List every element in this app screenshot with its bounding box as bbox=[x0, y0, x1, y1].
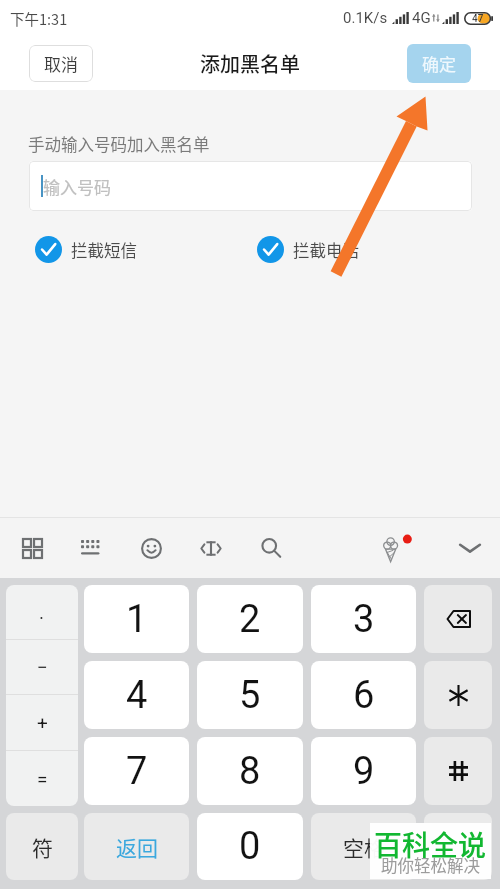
button[interactable] bbox=[424, 813, 492, 880]
staticText: . bbox=[39, 601, 45, 623]
button[interactable]: 6 bbox=[311, 661, 416, 729]
staticText: 助你轻松解决 bbox=[381, 853, 480, 877]
button[interactable]: 1 bbox=[84, 585, 189, 653]
button[interactable]: 返回 bbox=[84, 813, 189, 880]
button[interactable]: − bbox=[6, 640, 78, 694]
button[interactable]: = bbox=[6, 751, 78, 806]
staticText: 百科全说 bbox=[374, 824, 487, 865]
button[interactable]: Number pad bbox=[72, 529, 110, 567]
staticText: 3 bbox=[353, 597, 375, 642]
button[interactable]: Theme bbox=[377, 529, 415, 567]
button[interactable]: 拦截电话 bbox=[257, 236, 359, 263]
staticText: 9 bbox=[353, 749, 375, 794]
staticText: 空格 bbox=[343, 832, 385, 862]
button[interactable]: Hash bbox=[424, 737, 492, 805]
button[interactable]: Search bbox=[252, 529, 290, 567]
staticText: 取消 bbox=[44, 51, 78, 76]
staticText: 符 bbox=[32, 832, 53, 862]
staticText: 7 bbox=[126, 749, 148, 794]
staticText: 2 bbox=[239, 597, 261, 642]
staticText: 下午1:31 bbox=[10, 8, 68, 29]
staticText: 0.1K/s bbox=[343, 9, 388, 27]
staticText: − bbox=[37, 656, 48, 678]
button[interactable]: Keyboard layout bbox=[13, 529, 51, 567]
button[interactable]: . bbox=[6, 585, 78, 639]
button[interactable]: 输入号码 bbox=[29, 161, 472, 211]
button[interactable]: 确定 bbox=[407, 44, 471, 83]
button[interactable]: 7 bbox=[84, 737, 189, 805]
staticText: 8 bbox=[239, 749, 261, 794]
button[interactable]: + bbox=[6, 695, 78, 750]
staticText: 0 bbox=[239, 824, 261, 869]
staticText: + bbox=[37, 712, 48, 734]
button[interactable]: 0 bbox=[197, 813, 303, 880]
button[interactable]: Move cursor bbox=[192, 529, 230, 567]
staticText: = bbox=[37, 768, 48, 790]
button[interactable]: 5 bbox=[197, 661, 303, 729]
button[interactable]: 8 bbox=[197, 737, 303, 805]
button[interactable]: Hide keyboard bbox=[451, 529, 489, 567]
staticText: 4G bbox=[412, 9, 431, 27]
staticText: 5 bbox=[239, 673, 261, 718]
staticText: 返回 bbox=[116, 832, 158, 862]
staticText: 47 bbox=[472, 13, 484, 25]
button[interactable]: 取消 bbox=[29, 45, 93, 82]
button[interactable]: 拦截短信 bbox=[35, 236, 137, 263]
staticText: 拦截电话 bbox=[293, 238, 359, 262]
button[interactable]: 4 bbox=[84, 661, 189, 729]
staticText: 拦截短信 bbox=[71, 238, 137, 262]
staticText: 添加黑名单 bbox=[200, 49, 300, 78]
button[interactable]: Backspace bbox=[424, 585, 492, 653]
staticText: 1 bbox=[126, 597, 148, 642]
button[interactable]: 空格 bbox=[311, 813, 416, 880]
button[interactable]: 2 bbox=[197, 585, 303, 653]
button[interactable]: Emoji bbox=[132, 529, 170, 567]
staticText: 4 bbox=[126, 673, 148, 718]
staticText: 手动输入号码加入黑名单 bbox=[28, 132, 210, 156]
staticText: 输入号码 bbox=[43, 174, 111, 199]
button[interactable]: Star bbox=[424, 661, 492, 729]
staticText: 6 bbox=[353, 673, 375, 718]
button[interactable]: 3 bbox=[311, 585, 416, 653]
staticText: 确定 bbox=[422, 51, 456, 76]
button[interactable]: 9 bbox=[311, 737, 416, 805]
button[interactable]: 符 bbox=[6, 813, 78, 880]
